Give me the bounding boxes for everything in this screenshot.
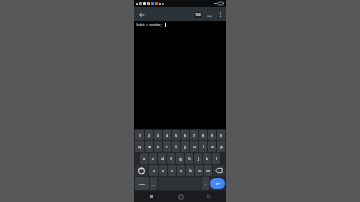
staticText: t [175,144,177,149]
button[interactable]: d [158,153,166,164]
staticText: ?123 [139,182,145,185]
staticText: 8 [202,133,204,138]
staticText: j [198,156,199,161]
button[interactable]: o [208,141,216,152]
staticText: number; [149,23,162,27]
staticText: q [138,144,141,149]
button[interactable]: m [204,165,212,176]
button[interactable]: s [149,153,157,164]
button[interactable]: TAB [194,12,202,18]
button[interactable]: i [199,141,207,152]
staticText: v [180,168,182,173]
button[interactable]: v [177,165,185,176]
staticText: n [198,168,201,173]
button[interactable]: z [149,165,158,176]
staticText: m [206,168,210,173]
button[interactable]: Recents [204,192,213,201]
staticText: e [157,144,159,149]
staticText: 6 [184,133,186,138]
button[interactable]: 8 [199,130,207,140]
button[interactable]: 5 [172,130,180,140]
staticText: p [220,144,223,149]
button[interactable]: a [140,153,148,164]
staticText: z [153,168,155,173]
staticText: d [161,156,164,161]
button[interactable]: q [135,141,144,152]
staticText: x [162,168,164,173]
button[interactable]: Backspace [213,165,225,176]
button[interactable]: b [186,165,194,176]
staticText: a [146,23,148,27]
button[interactable]: 6 [181,130,189,140]
staticText: k [206,156,208,161]
button[interactable]: e [154,141,162,152]
staticText: 4 [166,133,168,138]
staticText: b [189,168,192,173]
staticText: h [188,156,191,161]
button[interactable]: n [195,165,203,176]
button[interactable]: u [190,141,198,152]
staticText: 3 [157,133,159,138]
staticText: g [179,156,182,161]
staticText: Select [136,23,145,27]
button[interactable]: l [212,153,220,164]
button[interactable]: ?123 [135,177,149,190]
staticText: r [166,144,168,149]
button[interactable]: Collapse [205,11,213,19]
button[interactable]: 7 [190,130,198,140]
button[interactable]: 4 [163,130,171,140]
button[interactable]: 9 [208,130,216,140]
button[interactable]: Shift [135,165,148,176]
staticText: TAB [195,13,201,17]
staticText: i [203,144,204,149]
staticText: , [153,182,154,186]
staticText: 9 [211,133,213,138]
staticText: . [205,182,206,186]
button[interactable]: g [176,153,184,164]
staticText: w [148,144,151,149]
button[interactable]: k [203,153,211,164]
button[interactable]: h [185,153,193,164]
staticText: 7 [193,133,195,138]
staticText: 1 [139,133,141,138]
button[interactable]: Enter [210,178,225,189]
staticText: f [170,156,172,161]
button[interactable]: c [168,165,176,176]
staticText: l [216,156,217,161]
button[interactable]: f [167,153,175,164]
button[interactable]: . [202,177,209,190]
button[interactable]: j [194,153,202,164]
staticText: u [193,144,196,149]
staticText: c [171,168,173,173]
button[interactable]: Back [147,192,156,201]
button[interactable]: t [172,141,180,152]
staticText: 0 [220,133,222,138]
button[interactable]: 0 [217,130,225,140]
button[interactable]: r [163,141,171,152]
staticText: y [184,144,186,149]
button[interactable]: 3 [154,130,162,140]
button[interactable]: Home [176,192,185,201]
button[interactable]: w [145,141,153,152]
button[interactable]: p [217,141,225,152]
button[interactable]: , [150,177,157,190]
staticText: 2 [148,133,150,138]
staticText: s [152,156,154,161]
button[interactable]: y [181,141,189,152]
button[interactable]: Back [136,9,147,20]
button[interactable]: 1 [135,130,144,140]
staticText: 5 [175,133,177,138]
staticText: a [143,156,145,161]
button[interactable]: 2 [145,130,153,140]
staticText: o [211,144,214,149]
button[interactable]: More options [216,10,225,19]
button[interactable]: x [159,165,167,176]
